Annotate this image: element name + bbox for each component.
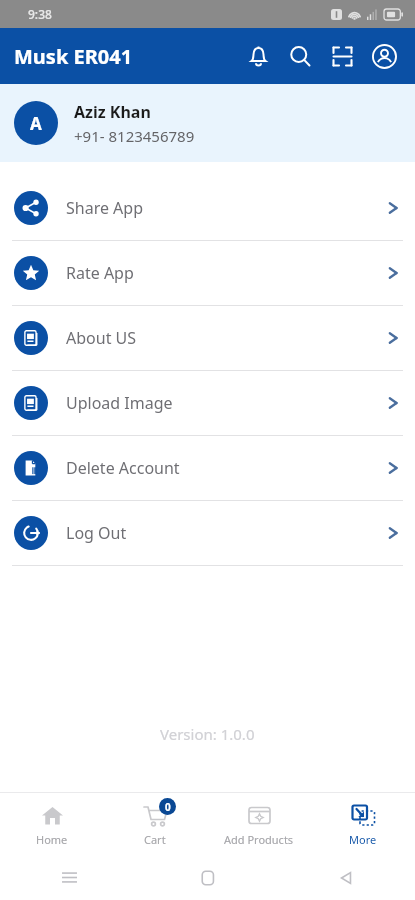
- staticText: Aziz Khan: [74, 101, 151, 123]
- staticText: Home: [36, 832, 68, 847]
- button[interactable]: Home: [139, 855, 277, 900]
- staticText: Cart: [144, 832, 166, 847]
- button[interactable]: About US: [0, 306, 415, 370]
- button[interactable]: Add Products: [207, 793, 311, 855]
- button[interactable]: Home: [0, 793, 103, 855]
- staticText: Delete Account: [66, 457, 385, 479]
- button[interactable]: A: [0, 84, 415, 162]
- staticText: About US: [66, 327, 385, 349]
- button[interactable]: Recent apps: [0, 855, 139, 900]
- button[interactable]: 0: [103, 793, 207, 855]
- staticText: A: [30, 112, 42, 135]
- staticText: Add Products: [224, 832, 294, 847]
- button[interactable]: Rate App: [0, 241, 415, 305]
- staticText: More: [349, 832, 377, 847]
- staticText: Rate App: [66, 262, 385, 284]
- button[interactable]: Notifications: [237, 35, 279, 77]
- button[interactable]: Search: [279, 35, 321, 77]
- button[interactable]: More: [311, 793, 415, 855]
- button[interactable]: Log Out: [0, 501, 415, 565]
- button[interactable]: Upload Image: [0, 371, 415, 435]
- staticText: Upload Image: [66, 392, 385, 414]
- button[interactable]: Delete Account: [0, 436, 415, 500]
- button[interactable]: Scan QR code: [321, 35, 363, 77]
- staticText: Version: 1.0.0: [160, 724, 255, 744]
- staticText: 0: [165, 800, 171, 814]
- staticText: Musk ER041: [14, 43, 133, 70]
- button[interactable]: Account: [363, 35, 405, 77]
- button[interactable]: Back: [277, 855, 415, 900]
- button[interactable]: Share App: [0, 176, 415, 240]
- staticText: Log Out: [66, 522, 385, 544]
- staticText: +91- 8123456789: [74, 126, 195, 146]
- staticText: Share App: [66, 197, 385, 219]
- staticText: 9:38: [28, 6, 52, 22]
